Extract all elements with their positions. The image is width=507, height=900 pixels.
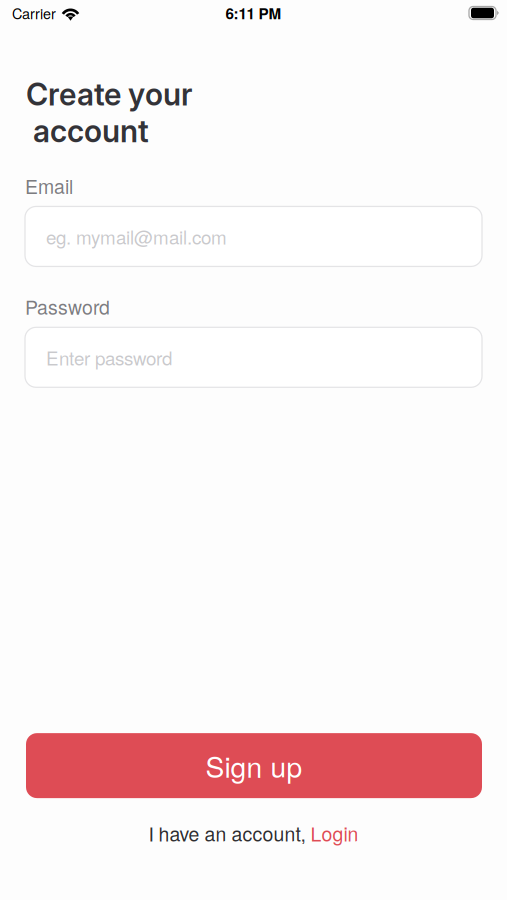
staticText: Password — [25, 292, 110, 320]
button[interactable]: Password — [25, 327, 482, 387]
staticText: Sign up — [205, 745, 302, 786]
staticText: eg. mymail@mail.com — [46, 223, 227, 250]
staticText: account — [26, 113, 149, 150]
staticText: Carrier — [12, 3, 56, 23]
button[interactable]: Email — [25, 206, 482, 266]
button[interactable]: I have an account, — [140, 814, 366, 852]
staticText: Email — [25, 172, 73, 199]
button[interactable]: Sign up — [26, 733, 482, 798]
staticText: 6:11 PM — [225, 2, 281, 24]
staticText: Create your — [26, 76, 192, 113]
staticText: Login — [310, 819, 358, 847]
staticText: Enter password — [46, 344, 172, 371]
staticText: I have an account, — [148, 819, 305, 847]
